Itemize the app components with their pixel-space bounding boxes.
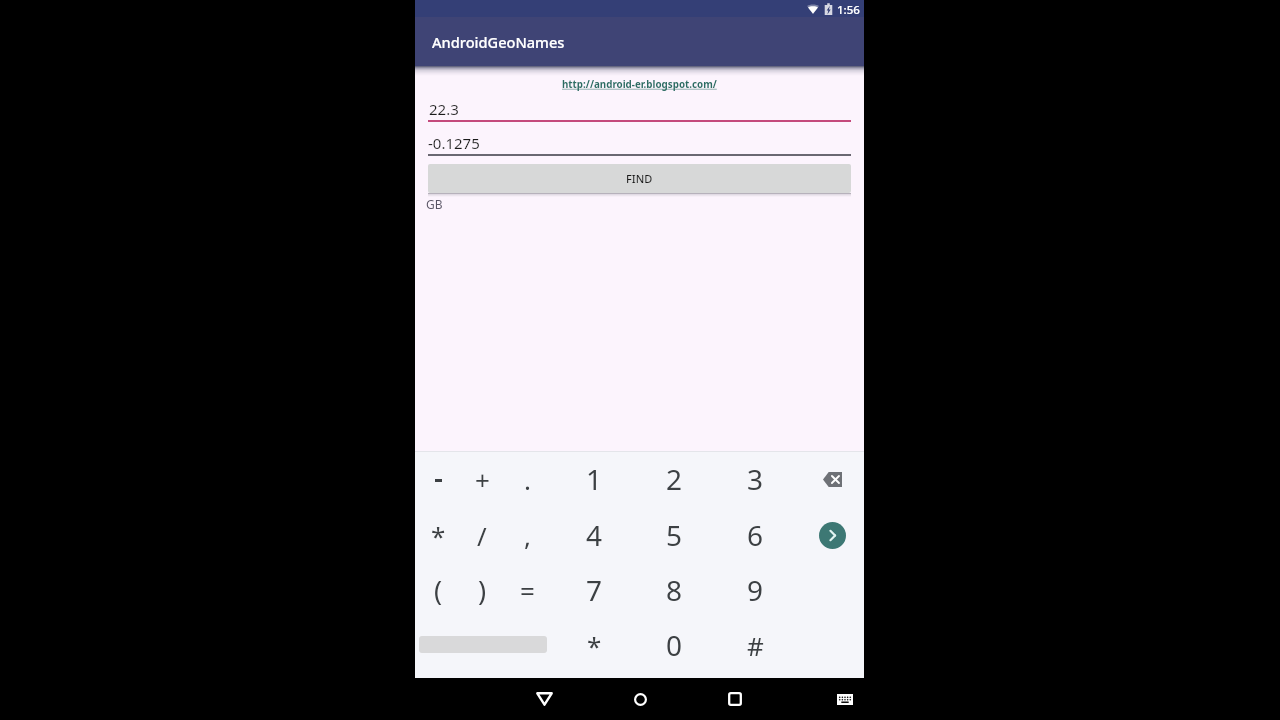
staticText: / — [477, 518, 487, 553]
button[interactable]: # — [730, 623, 780, 667]
staticText: -0.1275 — [428, 133, 480, 153]
staticText: 1:56 — [837, 2, 860, 18]
button[interactable]: http://android-er.blogspot.com/ — [562, 78, 717, 91]
button[interactable]: 9 — [730, 568, 780, 612]
button[interactable]: 1 — [569, 457, 619, 501]
button[interactable]: Backspace — [807, 457, 857, 501]
button[interactable]: -0.1275 — [428, 128, 851, 156]
staticText: 0 — [666, 626, 683, 664]
staticText: 22.3 — [429, 99, 459, 119]
staticText: + — [475, 462, 490, 497]
button[interactable]: + — [457, 457, 507, 501]
button[interactable]: 4 — [569, 513, 619, 557]
button[interactable]: ) — [457, 568, 507, 612]
staticText: 7 — [586, 571, 603, 609]
button[interactable]: 5 — [649, 513, 699, 557]
button[interactable]: = — [502, 568, 552, 612]
button[interactable]: Enter — [807, 513, 857, 557]
staticText: # — [747, 628, 764, 663]
button[interactable] — [413, 458, 463, 502]
staticText: ( — [434, 572, 443, 609]
staticText: * — [431, 518, 446, 553]
staticText: . — [524, 462, 531, 497]
button[interactable]: 3 — [730, 457, 780, 501]
button[interactable]: FIND — [428, 164, 851, 193]
button[interactable]: , — [502, 513, 552, 557]
staticText: FIND — [626, 171, 653, 186]
staticText: ) — [478, 572, 487, 609]
staticText: = — [520, 573, 535, 608]
button[interactable]: 8 — [649, 568, 699, 612]
button[interactable]: 6 — [730, 513, 780, 557]
staticText: GB — [426, 196, 443, 212]
staticText: 8 — [666, 571, 683, 609]
button[interactable]: 7 — [569, 568, 619, 612]
button[interactable]: 22.3 — [428, 94, 851, 122]
staticText: AndroidGeoNames — [432, 32, 565, 52]
staticText: 6 — [747, 516, 764, 554]
staticText: 3 — [747, 460, 764, 498]
button[interactable]: Home — [620, 679, 660, 719]
staticText: 4 — [586, 516, 603, 554]
button[interactable]: . — [502, 457, 552, 501]
button[interactable]: * — [413, 513, 463, 557]
button[interactable]: ( — [413, 568, 463, 612]
staticText: * — [587, 628, 602, 663]
staticText: 9 — [747, 571, 764, 609]
staticText: , — [524, 518, 531, 553]
button[interactable]: Space — [415, 623, 555, 667]
button[interactable]: * — [569, 623, 619, 667]
button[interactable]: Switch keyboard — [825, 679, 865, 719]
button[interactable]: 0 — [649, 623, 699, 667]
button[interactable]: / — [457, 513, 507, 557]
button[interactable]: Back — [524, 679, 564, 719]
button[interactable]: 2 — [649, 457, 699, 501]
button[interactable]: Recents — [715, 679, 755, 719]
staticText: 1 — [586, 460, 603, 498]
staticText: 5 — [666, 516, 683, 554]
staticText: 2 — [666, 460, 683, 498]
